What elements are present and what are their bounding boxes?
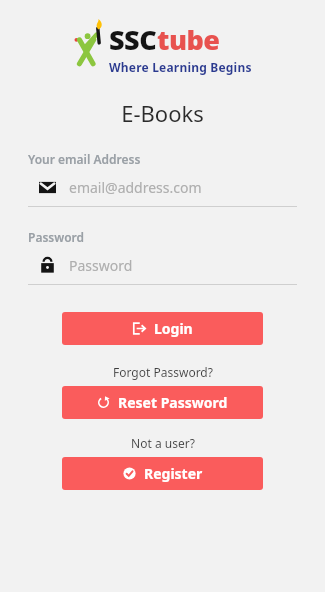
staticText: tube <box>157 21 220 58</box>
button[interactable]: Login <box>62 312 263 345</box>
staticText: Register <box>144 464 203 483</box>
staticText: Login <box>154 319 193 338</box>
staticText: Your email Address <box>28 151 141 167</box>
staticText: Not a user? <box>131 435 195 451</box>
button[interactable]: email@address.com <box>28 178 297 197</box>
staticText: Forgot Password? <box>113 364 213 380</box>
button[interactable]: Register <box>62 457 263 490</box>
staticText: E-Books <box>121 98 204 128</box>
staticText: Password <box>28 229 85 245</box>
staticText: SSC <box>109 21 157 58</box>
staticText: Where Learning Begins <box>109 59 252 75</box>
staticText: Reset Password <box>118 393 228 412</box>
staticText: email@address.com <box>69 178 202 197</box>
button[interactable]: Reset Password <box>62 386 263 419</box>
button[interactable]: Password <box>28 256 297 275</box>
staticText: Password <box>69 256 133 275</box>
